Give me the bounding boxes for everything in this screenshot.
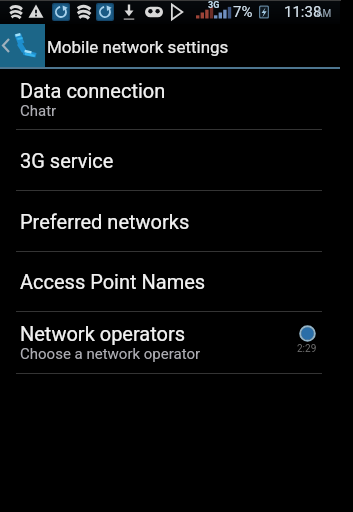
staticText: 7%	[233, 3, 253, 21]
button[interactable]: Data connection	[0, 69, 340, 129]
button[interactable]: Network operators	[0, 312, 340, 373]
staticText: 3G service	[20, 149, 114, 172]
staticText: 3G	[208, 0, 220, 11]
staticText: Mobile network settings	[47, 37, 229, 57]
staticText: Chatr	[20, 102, 57, 120]
staticText: AM	[316, 8, 332, 20]
button[interactable]: Preferred networks	[0, 191, 340, 251]
button[interactable]: Access Point Names	[0, 252, 340, 311]
staticText: 11:38	[284, 3, 322, 21]
button[interactable]: 3G service	[0, 130, 340, 190]
staticText: Network operators	[20, 322, 186, 345]
staticText: Access Point Names	[20, 270, 206, 293]
staticText: 2:29	[297, 343, 317, 355]
staticText: Data connection	[20, 79, 166, 102]
button[interactable]: Navigate up	[0, 24, 45, 67]
staticText: Choose a network operator	[20, 345, 201, 363]
staticText: Preferred networks	[20, 210, 190, 233]
